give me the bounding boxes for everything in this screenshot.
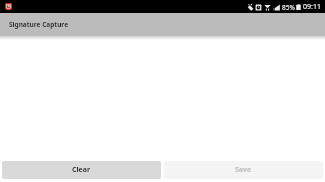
staticText: 09:11 xyxy=(303,2,321,12)
button[interactable]: Save xyxy=(164,161,323,179)
staticText: 85% xyxy=(282,3,295,12)
staticText: Clear xyxy=(72,165,91,175)
staticText: Signature Capture xyxy=(9,20,69,29)
staticText: Save xyxy=(235,165,252,175)
other: Alarm notification xyxy=(4,2,13,11)
button[interactable]: Clear xyxy=(2,161,161,179)
